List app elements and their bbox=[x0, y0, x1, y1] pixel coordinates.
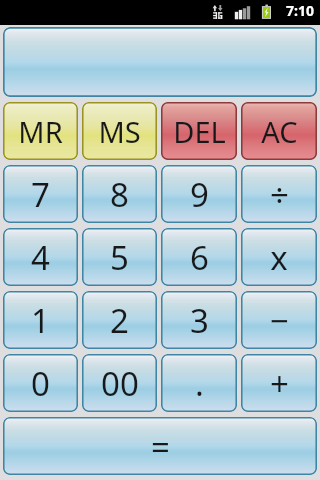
staticText: MS bbox=[98, 112, 141, 151]
staticText: 6 bbox=[190, 235, 209, 280]
staticText: 3 bbox=[190, 298, 209, 343]
staticText: + bbox=[270, 361, 289, 406]
button[interactable]: 7 bbox=[3, 165, 78, 223]
button[interactable]: AC bbox=[241, 102, 317, 160]
button[interactable]: 1 bbox=[3, 291, 78, 349]
button[interactable]: equals bbox=[3, 417, 317, 475]
button[interactable]: 0 bbox=[3, 354, 78, 412]
button[interactable]: 8 bbox=[82, 165, 157, 223]
staticText: − bbox=[270, 298, 289, 343]
button[interactable]: MR bbox=[3, 102, 78, 160]
button[interactable]: 00 bbox=[82, 354, 157, 412]
staticText: 7 bbox=[31, 172, 50, 217]
staticText: 8 bbox=[110, 172, 129, 217]
staticText: . bbox=[195, 361, 204, 406]
button[interactable]: ÷ bbox=[241, 165, 317, 223]
button[interactable]: DEL bbox=[161, 102, 237, 160]
other: 3G data bbox=[212, 4, 224, 20]
button[interactable]: 3 bbox=[161, 291, 237, 349]
button[interactable]: 4 bbox=[3, 228, 78, 286]
staticText: 4 bbox=[31, 235, 50, 280]
button[interactable]: . bbox=[161, 354, 237, 412]
staticText: 00 bbox=[101, 361, 139, 406]
button[interactable]: + bbox=[241, 354, 317, 412]
staticText: 2 bbox=[110, 298, 129, 343]
staticText: MR bbox=[18, 112, 63, 151]
button[interactable]: − bbox=[241, 291, 317, 349]
other: Signal strength bbox=[234, 5, 251, 20]
staticText: DEL bbox=[173, 112, 226, 151]
staticText: 1 bbox=[31, 298, 50, 343]
staticText: 0 bbox=[31, 361, 50, 406]
staticText: x bbox=[270, 235, 288, 280]
button[interactable]: 2 bbox=[82, 291, 157, 349]
button[interactable]: MS bbox=[82, 102, 157, 160]
staticText: = bbox=[151, 424, 170, 469]
other: Battery charging bbox=[260, 4, 273, 21]
button[interactable]: x bbox=[241, 228, 317, 286]
button[interactable]: 9 bbox=[161, 165, 237, 223]
staticText: 5 bbox=[110, 235, 129, 280]
button[interactable]: Display bbox=[3, 27, 317, 97]
staticText: 9 bbox=[190, 172, 209, 217]
staticText: AC bbox=[261, 112, 298, 151]
staticText: ÷ bbox=[270, 172, 289, 217]
staticText: 7:10 bbox=[286, 1, 314, 20]
button[interactable]: 6 bbox=[161, 228, 237, 286]
button[interactable]: 5 bbox=[82, 228, 157, 286]
